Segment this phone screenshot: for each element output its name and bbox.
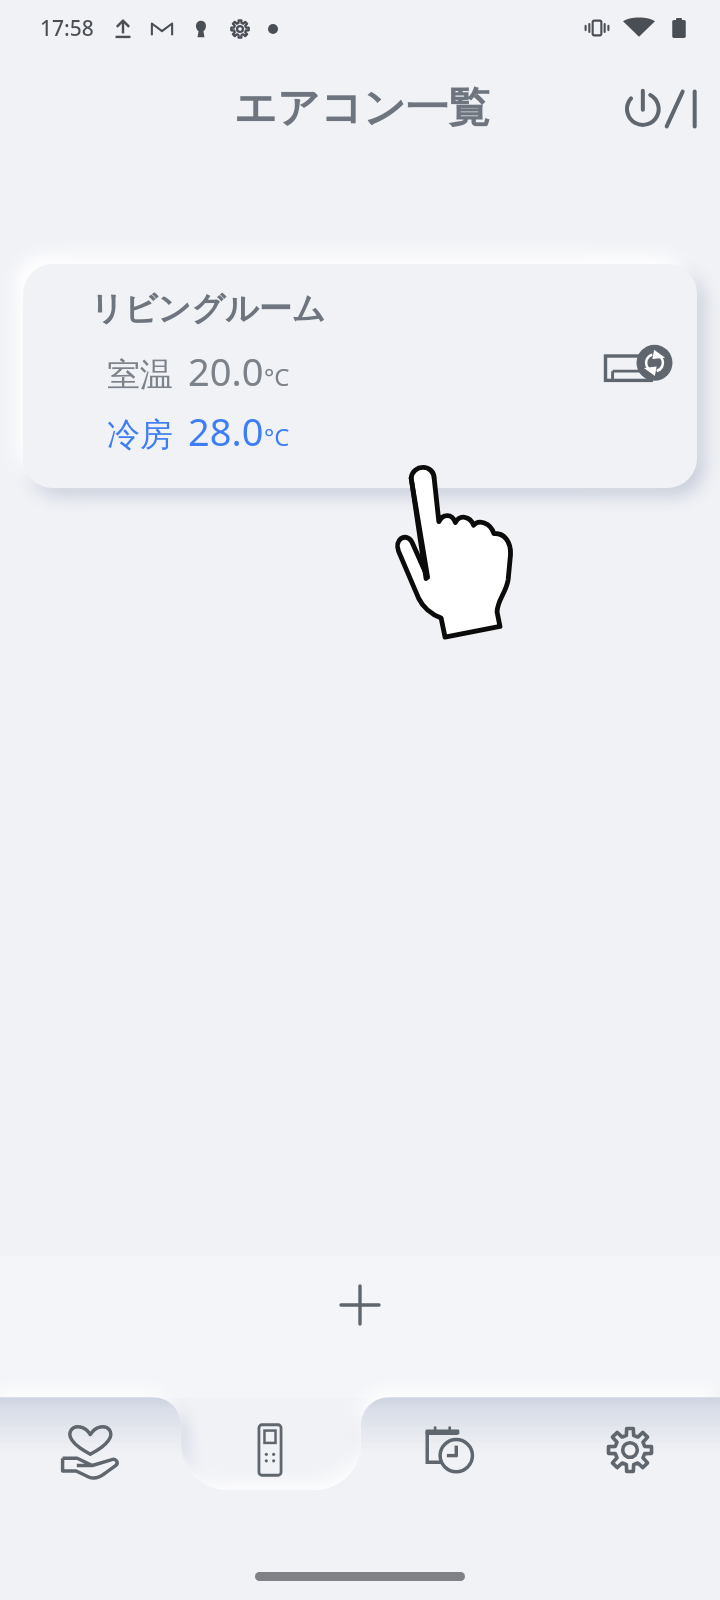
button[interactable]: Settings	[540, 1402, 720, 1498]
staticText: 室温	[107, 354, 173, 396]
staticText: °C	[264, 360, 290, 393]
button[interactable]: Schedule	[360, 1402, 540, 1498]
staticText: 28.0	[188, 405, 264, 457]
button[interactable]: Remote	[180, 1402, 360, 1498]
staticText: リビングルーム	[90, 288, 326, 330]
staticText: 20.0	[188, 345, 264, 397]
staticText: 冷房	[107, 414, 173, 456]
button[interactable]: リビングルーム	[23, 264, 697, 488]
staticText: エアコン一覧	[234, 82, 490, 135]
button[interactable]: Add air conditioner	[320, 1265, 400, 1345]
button[interactable]: Power toggle	[612, 73, 696, 145]
staticText: °C	[264, 420, 290, 453]
staticText: 17:58	[40, 14, 94, 43]
button[interactable]: Favorites	[0, 1402, 180, 1498]
